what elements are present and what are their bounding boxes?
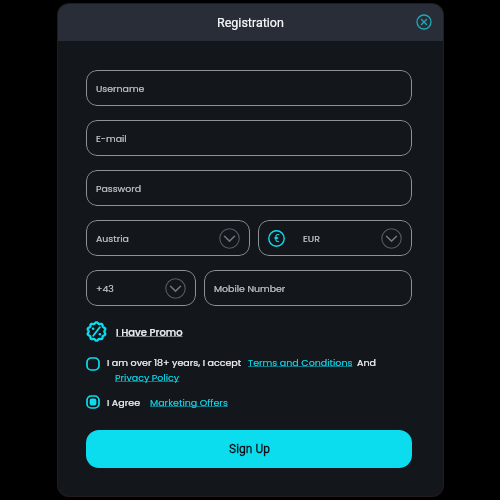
staticText: I Agree <box>107 396 141 409</box>
staticText: E-mail <box>96 132 127 145</box>
button[interactable]: Marketing Offers <box>150 396 228 409</box>
button[interactable]: Sign Up <box>86 430 412 468</box>
button[interactable]: Terms and Conditions <box>248 356 353 369</box>
button[interactable] <box>86 357 100 371</box>
button[interactable]: Password <box>86 170 412 206</box>
button[interactable]: E-mail <box>86 120 412 156</box>
staticText: EUR <box>303 232 320 245</box>
staticText: Mobile Number <box>214 282 286 295</box>
staticText: Austria <box>96 232 129 245</box>
staticText: And <box>357 356 376 369</box>
button[interactable]: Username <box>86 70 412 106</box>
staticText: € <box>274 233 280 245</box>
button[interactable] <box>86 395 100 409</box>
staticText: Username <box>96 82 145 95</box>
staticText: +43 <box>96 282 114 295</box>
button[interactable]: +43 <box>86 270 196 306</box>
button[interactable]: Close <box>412 10 436 34</box>
button[interactable]: Mobile Number <box>204 270 412 306</box>
staticText: I am over 18+ years, I accept <box>107 356 242 369</box>
staticText: Password <box>96 182 142 195</box>
button[interactable]: € <box>258 220 412 256</box>
button[interactable]: Privacy Policy <box>115 371 180 384</box>
staticText: Registration <box>217 15 284 30</box>
button[interactable]: I Have Promo <box>86 321 183 342</box>
button[interactable]: Austria <box>86 220 250 256</box>
staticText: I Have Promo <box>116 325 183 339</box>
staticText: Sign Up <box>229 442 270 456</box>
